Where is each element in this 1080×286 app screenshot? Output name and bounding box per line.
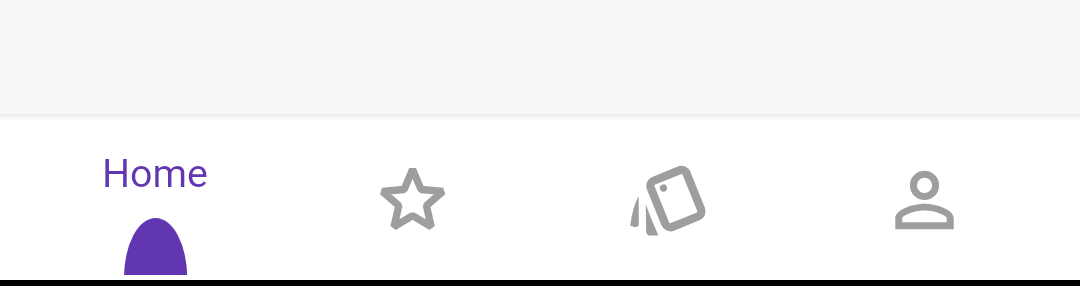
button[interactable]: Shake (539, 114, 796, 280)
button[interactable]: Favourites (283, 114, 539, 280)
button[interactable]: Home (27, 114, 283, 280)
button[interactable]: Profile (796, 114, 1053, 280)
staticText: Home (102, 150, 208, 196)
